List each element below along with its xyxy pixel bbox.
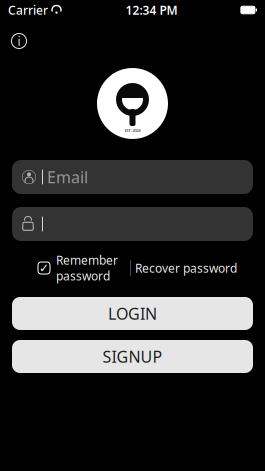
button[interactable]: Information xyxy=(4,26,34,56)
staticText: Carrier xyxy=(8,2,48,18)
button[interactable]: SIGNUP xyxy=(12,340,253,373)
staticText: ✓ xyxy=(39,261,49,275)
staticText: LOGIN xyxy=(108,303,157,324)
staticText: EST. 2024 xyxy=(124,128,140,133)
staticText: Recover password xyxy=(135,260,237,276)
staticText: BRENTWOOD PADEL CLUB xyxy=(106,72,159,77)
button[interactable]: Recover password xyxy=(131,258,241,278)
staticText: 12:34 PM xyxy=(125,2,177,18)
button[interactable]: LOGIN xyxy=(12,297,253,330)
staticText: Email xyxy=(47,166,88,188)
staticText: i xyxy=(17,33,20,49)
staticText: Remember password xyxy=(56,252,118,284)
staticText: SIGNUP xyxy=(102,346,162,367)
button[interactable]: ✓ xyxy=(38,252,118,284)
